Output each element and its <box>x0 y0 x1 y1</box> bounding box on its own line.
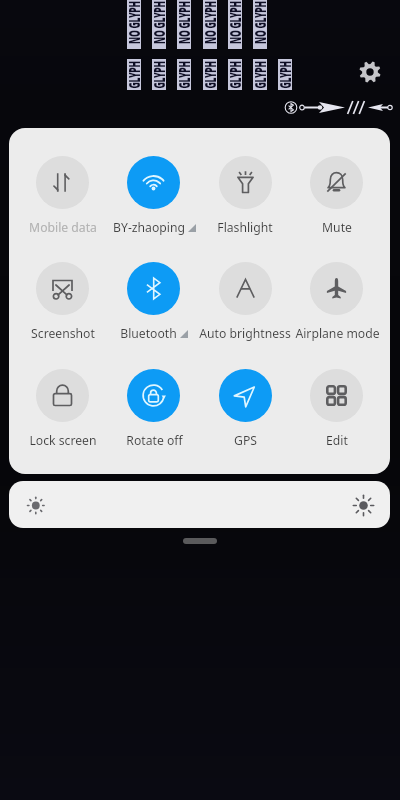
button[interactable] <box>108 146 199 230</box>
button[interactable]: GPS <box>219 369 272 422</box>
button[interactable] <box>200 359 291 443</box>
button[interactable]: Collapse <box>183 538 217 544</box>
button[interactable]: Settings <box>356 58 384 86</box>
staticText: Airplane mode <box>295 325 380 342</box>
staticText: Mute <box>322 219 352 236</box>
button[interactable]: Auto brightness <box>219 262 272 315</box>
staticText: Screenshot <box>31 325 95 342</box>
button[interactable]: BY-zhaoping <box>127 156 180 209</box>
staticText: Bluetooth <box>120 325 177 342</box>
staticText: Mobile data <box>29 219 97 236</box>
staticText: Flashlight <box>217 219 273 236</box>
button[interactable] <box>17 252 108 336</box>
button[interactable] <box>17 146 108 230</box>
button[interactable] <box>108 359 199 443</box>
staticText: Auto brightness <box>199 325 291 342</box>
button[interactable]: Mute <box>310 156 363 209</box>
staticText: Rotate off <box>126 432 183 449</box>
button[interactable] <box>17 359 108 443</box>
button[interactable]: Flashlight <box>219 156 272 209</box>
button[interactable] <box>200 146 291 230</box>
button[interactable]: Edit <box>310 369 363 422</box>
button[interactable]: Mobile data <box>36 156 89 209</box>
button[interactable]: Airplane mode <box>310 262 363 315</box>
button[interactable]: Bluetooth <box>127 262 180 315</box>
button[interactable] <box>291 252 382 336</box>
button[interactable] <box>291 146 382 230</box>
button[interactable] <box>291 359 382 443</box>
staticText: BY-zhaoping <box>113 219 185 236</box>
button[interactable] <box>108 252 199 336</box>
button[interactable]: Brightness <box>9 481 390 528</box>
button[interactable]: Lock screen <box>36 369 89 422</box>
staticText: Lock screen <box>29 432 97 449</box>
button[interactable]: Rotate off <box>127 369 180 422</box>
staticText: Edit <box>326 432 348 449</box>
button[interactable]: Screenshot <box>36 262 89 315</box>
button[interactable] <box>200 252 291 336</box>
staticText: GPS <box>234 432 257 449</box>
